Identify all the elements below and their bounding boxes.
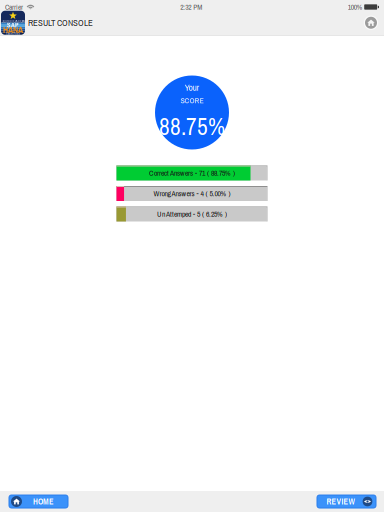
staticText: SCORE: [180, 95, 203, 106]
staticText: Wrong Answers - 4 ( 5.00% ): [153, 188, 230, 199]
staticText: CERTIFICATION: [1, 19, 24, 24]
staticText: Carrier: [5, 2, 23, 12]
staticText: 100%: [348, 2, 362, 12]
staticText: Exam Prep: [5, 31, 20, 36]
staticText: Un Attemped - 5 ( 6.25% ): [157, 209, 227, 219]
staticText: RESULT CONSOLE: [28, 17, 93, 29]
button[interactable]: REVIEW: [317, 495, 376, 508]
staticText: 88.75%: [159, 111, 225, 142]
staticText: SAP: [7, 21, 19, 29]
staticText: REVIEW: [326, 496, 354, 507]
staticText: HANA: [3, 24, 23, 36]
button[interactable]: Home: [361, 13, 381, 33]
button[interactable]: HOME: [9, 495, 68, 508]
staticText: 2:32 PM: [180, 2, 202, 12]
staticText: Correct Answers - 71 ( 88.75% ): [149, 168, 235, 178]
staticText: Your: [184, 81, 199, 94]
staticText: HOME: [33, 496, 54, 507]
